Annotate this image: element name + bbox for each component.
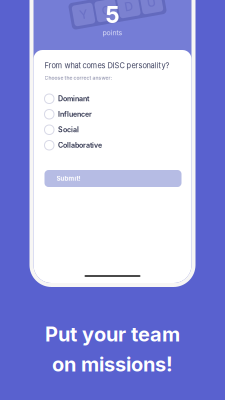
staticText: Choose the correct answer: (44, 75, 112, 81)
button[interactable]: Submit! (44, 170, 181, 187)
button[interactable]: Dominant (44, 91, 181, 106)
staticText: From what comes DISC personality? (44, 61, 169, 70)
staticText: points (102, 28, 122, 37)
staticText: Influencer (58, 110, 92, 118)
staticText: Social (58, 125, 79, 134)
staticText: Submit! (56, 175, 80, 182)
button[interactable]: Influencer (44, 106, 181, 122)
staticText: U (147, 1, 156, 16)
staticText: O (101, 1, 110, 16)
staticText: Put your team (45, 322, 180, 346)
staticText: D (124, 1, 133, 16)
staticText: Collaborative (58, 141, 102, 149)
staticText: Dominant (58, 94, 89, 103)
staticText: Y (79, 1, 87, 16)
staticText: on missions! (52, 352, 173, 376)
staticText: 5 (105, 1, 119, 28)
button[interactable]: Social (44, 122, 181, 137)
button[interactable]: Collaborative (44, 137, 181, 153)
